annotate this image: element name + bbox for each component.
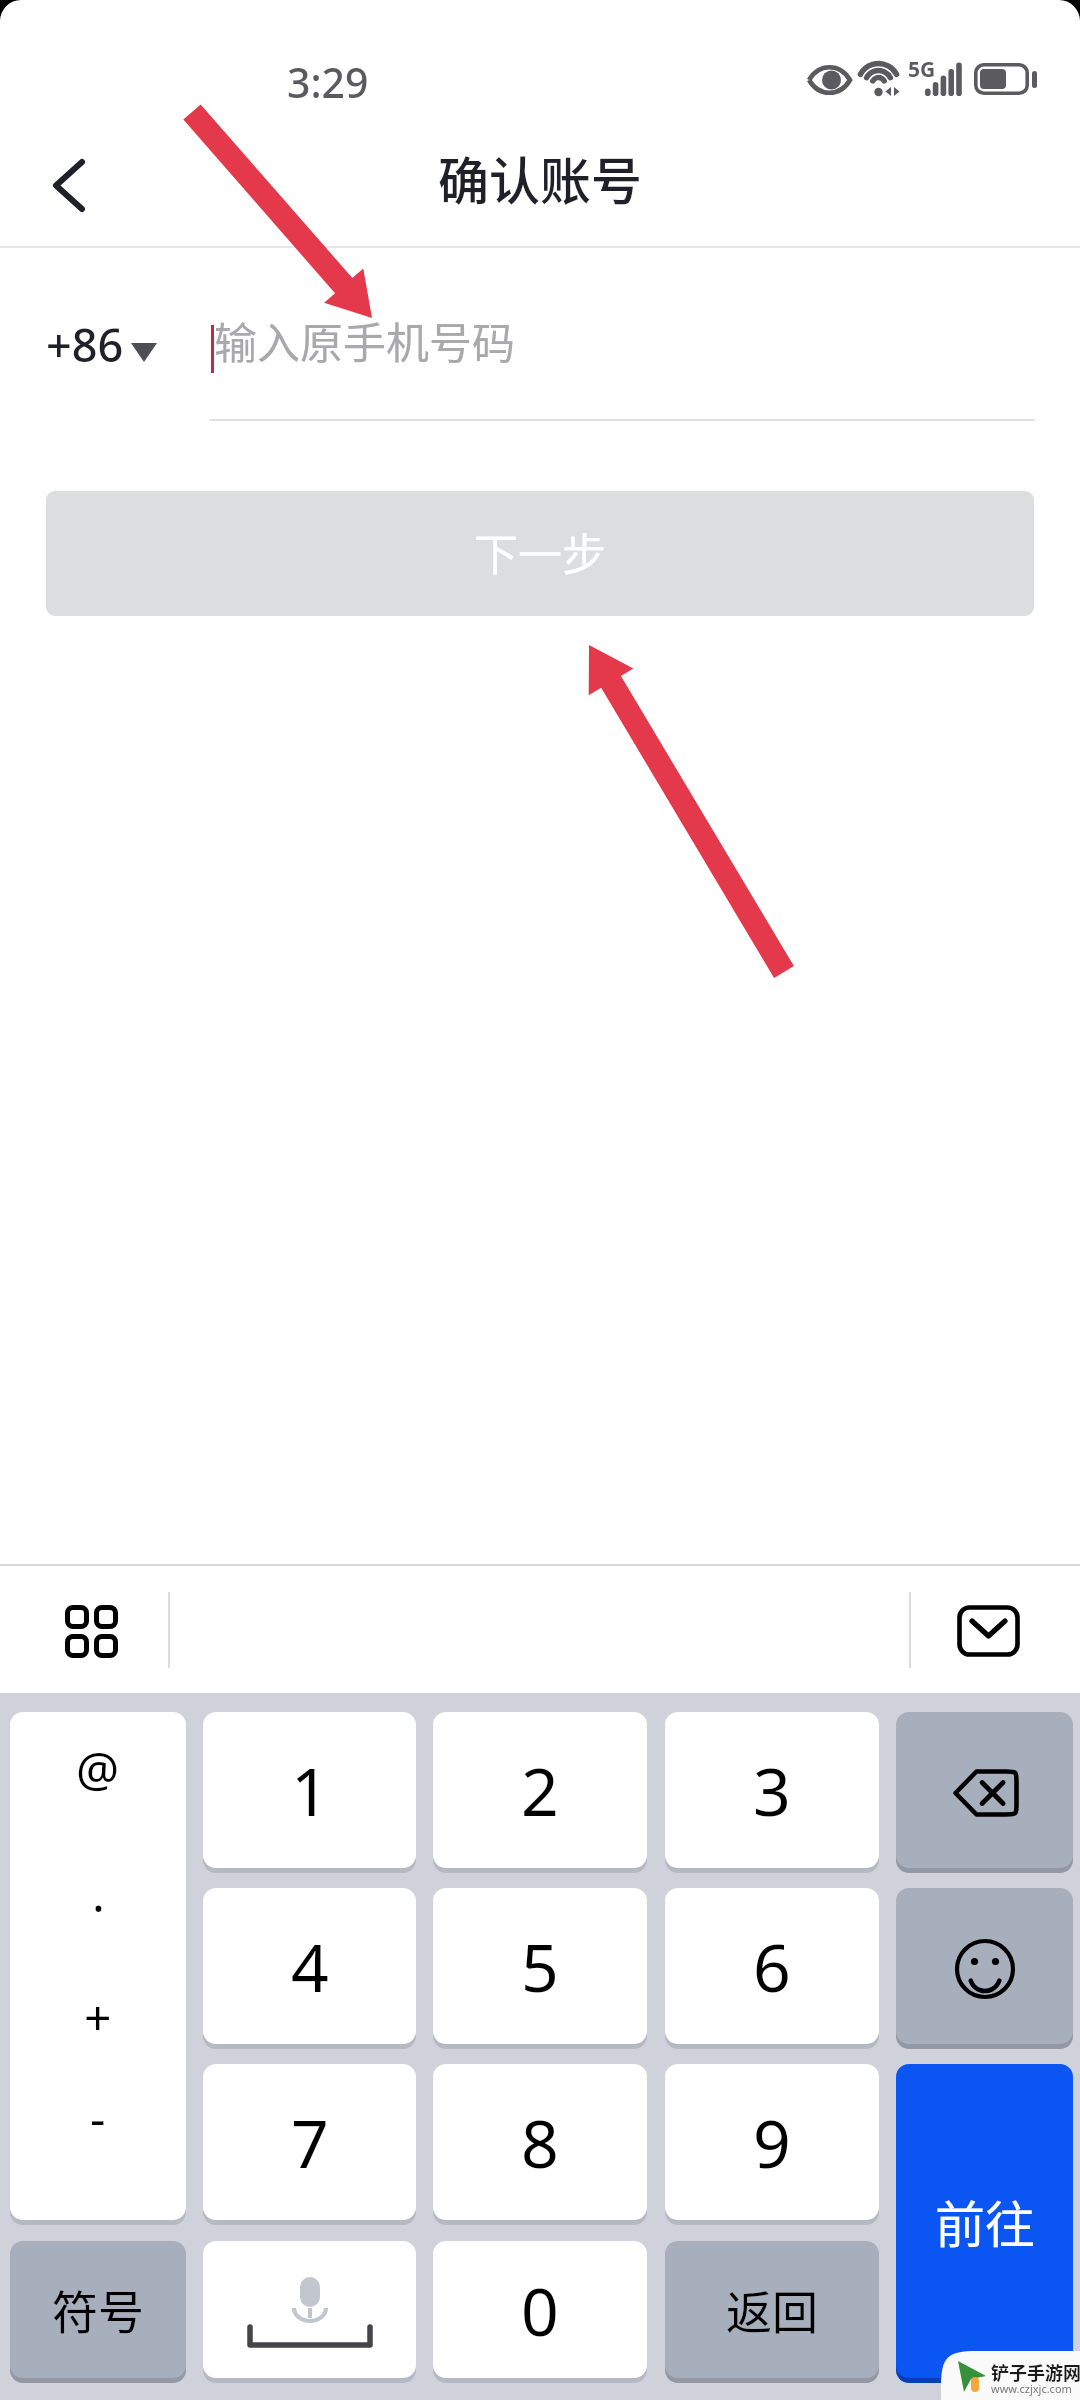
staticText: 7 <box>291 2097 329 2187</box>
button[interactable]: 6 <box>665 1888 879 2049</box>
button[interactable]: Backspace <box>896 1712 1073 1873</box>
staticText: - <box>90 2085 106 2150</box>
staticText: 符号 <box>52 2276 144 2343</box>
button[interactable]: Hide keyboard <box>925 1578 1051 1678</box>
button[interactable]: Back <box>0 124 124 248</box>
staticText: . <box>92 1861 105 1926</box>
staticText: www.czjxjc.com <box>991 2381 1072 2396</box>
staticText: @ <box>76 1736 120 1801</box>
staticText: 前往 <box>935 2185 1035 2257</box>
button[interactable]: 符号 <box>10 2241 186 2383</box>
staticText: 0 <box>521 2265 559 2355</box>
staticText: 6 <box>753 1921 791 2011</box>
button[interactable]: 3 <box>665 1712 879 1873</box>
staticText: 8 <box>521 2097 559 2187</box>
staticText: 2 <box>521 1745 559 1835</box>
button[interactable]: 9 <box>665 2064 879 2225</box>
staticText: 3 <box>753 1745 791 1835</box>
button[interactable]: Keyboard layouts <box>14 1578 168 1678</box>
button[interactable]: Emoji <box>896 1888 1073 2049</box>
staticText: 下一步 <box>474 520 606 584</box>
staticText: 1 <box>291 1745 329 1835</box>
button[interactable]: 2 <box>433 1712 647 1873</box>
button[interactable]: 7 <box>203 2064 416 2225</box>
button[interactable]: Voice input <box>203 2241 416 2383</box>
button[interactable]: 下一步 <box>46 491 1034 616</box>
staticText: 确认账号 <box>438 141 643 215</box>
button[interactable]: 4 <box>203 1888 416 2049</box>
button[interactable]: 前往 <box>896 2064 1073 2383</box>
staticText: 9 <box>753 2097 791 2187</box>
button[interactable]: +86 <box>46 314 157 375</box>
staticText: 4 <box>291 1921 329 2011</box>
button[interactable]: 1 <box>203 1712 416 1873</box>
staticText: 3:29 <box>287 54 369 110</box>
staticText: + <box>84 1984 112 2049</box>
staticText: 5G <box>908 55 936 84</box>
button[interactable]: 8 <box>433 2064 647 2225</box>
button[interactable]: 5 <box>433 1888 647 2049</box>
button[interactable]: 返回 <box>665 2241 879 2383</box>
staticText: 输入原手机号码 <box>214 309 515 371</box>
button[interactable]: @ <box>10 1712 186 2225</box>
staticText: +86 <box>46 314 124 375</box>
staticText: 返回 <box>726 2276 818 2343</box>
button[interactable]: 0 <box>433 2241 647 2383</box>
staticText: 5 <box>521 1921 559 2011</box>
staticText: 铲子手游网 <box>991 2359 1080 2385</box>
